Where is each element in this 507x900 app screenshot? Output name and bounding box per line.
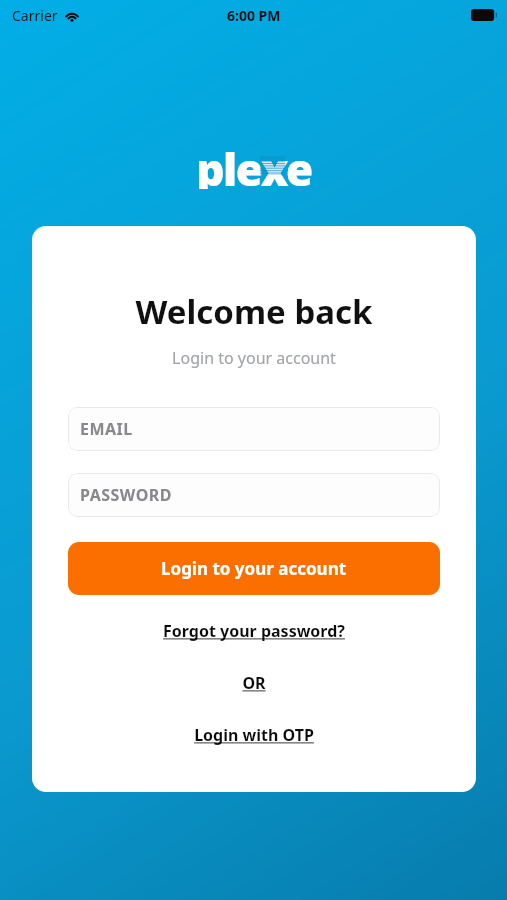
staticText: PASSWORD [80,484,173,506]
staticText: Welcome back [135,289,373,334]
other: Battery full [471,9,497,21]
other: plexe [190,139,318,189]
staticText: Login to your account [161,557,347,580]
staticText: Login to your account [172,347,336,369]
button[interactable]: OR [230,669,278,697]
staticText: 6:00 PM [227,6,281,25]
button[interactable]: EMAIL [68,407,440,451]
staticText: Login with OTP [194,724,314,746]
staticText: plexe [196,139,312,189]
staticText: OR [242,672,266,694]
other: Wi-Fi [64,10,80,22]
staticText: EMAIL [80,418,133,440]
button[interactable]: Login with OTP [182,721,326,749]
button[interactable]: Login to your account [68,542,440,595]
button[interactable]: Forgot your password? [151,617,357,645]
button[interactable]: PASSWORD [68,473,440,517]
staticText: Carrier [12,6,58,25]
staticText: Forgot your password? [163,620,345,642]
